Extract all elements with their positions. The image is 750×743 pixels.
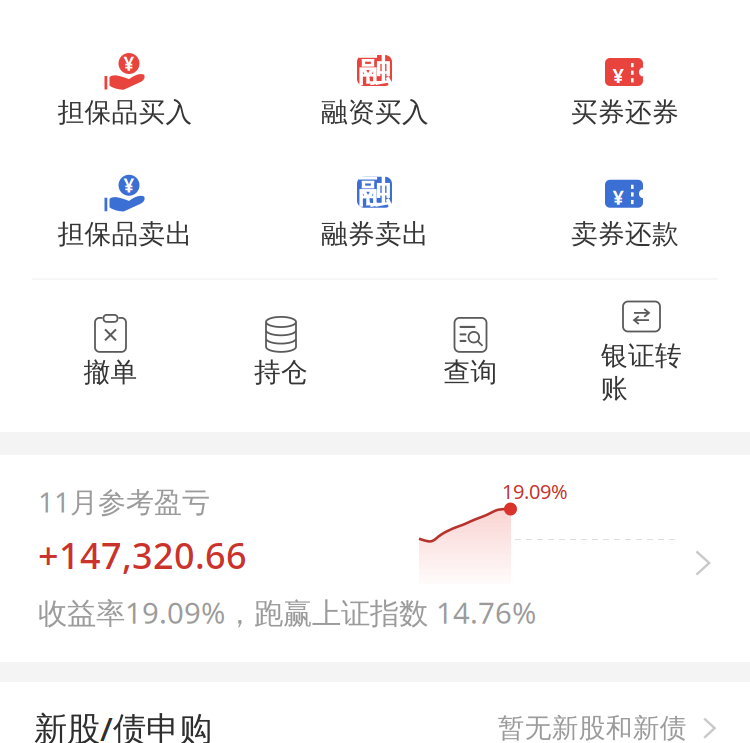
staticText: 持仓 bbox=[254, 356, 308, 389]
button[interactable]: 持仓 bbox=[221, 315, 341, 389]
staticText: 收益率19.09%，跑赢上证指数 14.76% bbox=[38, 593, 536, 632]
staticText: 卖券还款 bbox=[571, 218, 679, 251]
staticText: 融券卖出 bbox=[321, 218, 429, 251]
button[interactable]: 融 bbox=[250, 45, 500, 129]
button[interactable]: ¥ bbox=[0, 45, 250, 129]
staticText: 暂无新股和新债 bbox=[498, 712, 687, 743]
staticText: ¥ bbox=[612, 184, 623, 210]
staticText: ¥ bbox=[612, 62, 623, 89]
staticText: 融 bbox=[358, 172, 391, 213]
staticText: 担保品卖出 bbox=[57, 218, 192, 251]
button[interactable]: ¥ bbox=[500, 45, 750, 129]
button[interactable]: 融 bbox=[250, 167, 500, 251]
button[interactable]: 11月参考盈亏 bbox=[0, 455, 750, 662]
button[interactable]: 撤单 bbox=[0, 315, 221, 389]
button[interactable]: ¥ bbox=[500, 167, 750, 251]
staticText: 11月参考盈亏 bbox=[38, 483, 210, 520]
staticText: 银证转账 bbox=[601, 339, 682, 405]
staticText: 融 bbox=[358, 50, 391, 91]
staticText: 查询 bbox=[443, 356, 497, 389]
staticText: 融资买入 bbox=[321, 96, 429, 129]
staticText: 19.09% bbox=[502, 478, 568, 505]
staticText: +147,320.66 bbox=[38, 531, 247, 579]
button[interactable]: 新股/债申购 bbox=[0, 682, 750, 743]
button[interactable]: ¥ bbox=[0, 167, 250, 251]
staticText: 撤单 bbox=[83, 356, 137, 389]
staticText: ¥ bbox=[123, 173, 134, 198]
staticText: ¥ bbox=[123, 51, 134, 76]
staticText: 买券还券 bbox=[571, 96, 679, 129]
staticText: 新股/债申购 bbox=[34, 706, 212, 743]
staticText: 担保品买入 bbox=[57, 96, 192, 129]
button[interactable]: 银证转账 bbox=[600, 298, 683, 405]
button[interactable]: 查询 bbox=[341, 315, 600, 389]
